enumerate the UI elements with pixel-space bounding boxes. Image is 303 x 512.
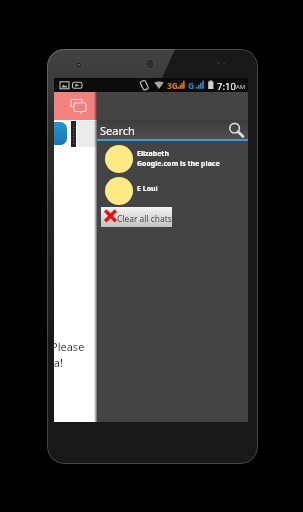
staticText: E Loui: [137, 184, 158, 194]
button[interactable]: Chats: [70, 98, 88, 115]
staticText: G: [188, 80, 195, 92]
staticText: 7:10: [217, 80, 236, 93]
button[interactable]: Clear all chats: [101, 207, 172, 227]
staticText: 3G: [167, 80, 179, 92]
staticText: Search: [100, 123, 135, 138]
staticText: Please: [51, 339, 85, 354]
staticText: Clear all chats: [117, 213, 172, 224]
staticText: Google.com is the place: [137, 159, 220, 169]
button[interactable]: E Loui: [97, 175, 248, 207]
button[interactable]: Elizabeth: [97, 143, 248, 175]
staticText: ia!: [51, 355, 63, 370]
button[interactable]: Tab: [54, 122, 67, 145]
button[interactable]: Search: [97, 120, 248, 139]
staticText: AM: [236, 83, 246, 91]
staticText: Elizabeth: [137, 149, 169, 159]
